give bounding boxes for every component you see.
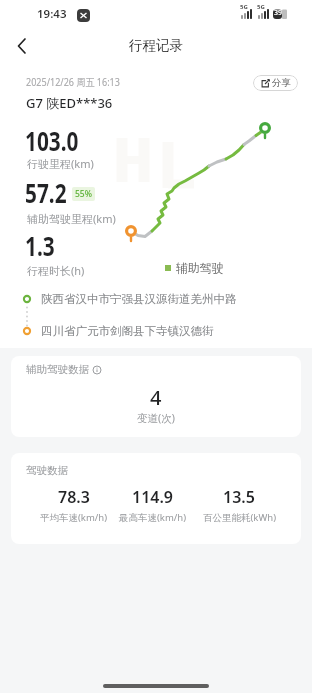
staticText: 分享 bbox=[272, 77, 291, 89]
staticText: 最高车速(km/h) bbox=[119, 511, 187, 524]
staticText: 行程记录 bbox=[129, 37, 183, 54]
staticText: 13.5 bbox=[223, 486, 255, 508]
staticText: 57.2 bbox=[25, 175, 67, 210]
staticText: 55% bbox=[75, 188, 92, 200]
button[interactable]: 分享 bbox=[253, 75, 298, 91]
staticText: 5G bbox=[240, 3, 248, 11]
staticText: 2025/12/26 周五 16:13 bbox=[26, 75, 121, 89]
staticText: 78.3 bbox=[58, 486, 90, 508]
staticText: 陕西省汉中市宁强县汉源街道羌州中路 bbox=[41, 292, 237, 306]
staticText: 行程时长(h) bbox=[27, 263, 85, 278]
staticText: 5G bbox=[257, 3, 265, 11]
staticText: 39 bbox=[274, 8, 283, 18]
staticText: G7 陕ED***36 bbox=[26, 94, 113, 112]
staticText: 平均车速(km/h) bbox=[40, 511, 108, 524]
staticText: 辅助驾驶 bbox=[176, 261, 224, 276]
staticText: 1.3 bbox=[25, 228, 55, 263]
staticText: 百公里能耗(kWh) bbox=[203, 511, 276, 524]
staticText: 19:43 bbox=[37, 6, 67, 22]
staticText: 114.9 bbox=[132, 486, 174, 508]
staticText: 行驶里程(km) bbox=[27, 156, 94, 171]
staticText: 103.0 bbox=[25, 123, 79, 158]
staticText: 辅助驾驶数据 bbox=[26, 363, 89, 376]
staticText: 变道(次) bbox=[137, 411, 175, 425]
staticText: 四川省广元市剑阁县下寺镇汉德街 bbox=[41, 324, 214, 338]
staticText: 驾驶数据 bbox=[26, 464, 68, 477]
button[interactable] bbox=[8, 32, 38, 60]
staticText: 辅助驾驶里程(km) bbox=[27, 211, 116, 226]
staticText: 4 bbox=[150, 384, 162, 411]
